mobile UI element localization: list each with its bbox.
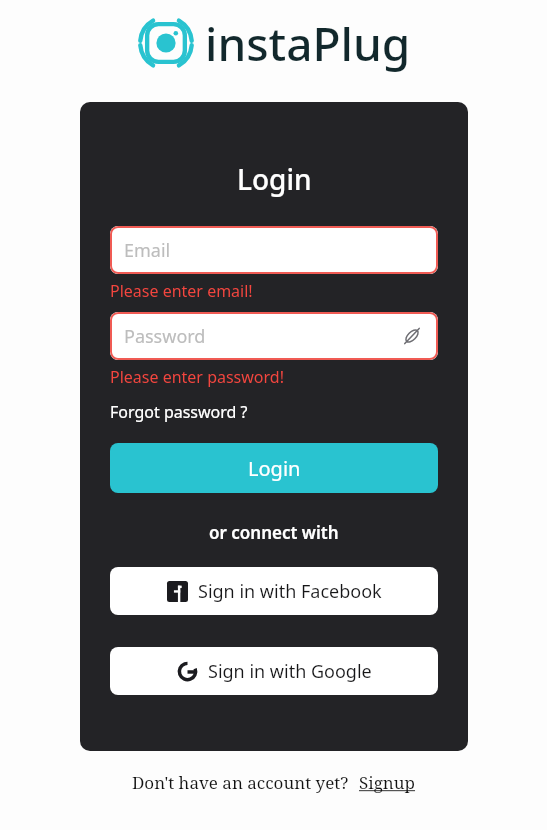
- staticText: Sign in with Google: [208, 659, 372, 684]
- button[interactable]: Forgot password ?: [110, 401, 438, 423]
- staticText: Email: [124, 238, 424, 263]
- staticText: Please enter password!: [110, 366, 284, 388]
- staticText: instaPlug: [205, 12, 411, 75]
- staticText: Signup: [359, 771, 416, 794]
- other: instaPlug logo: [137, 14, 195, 72]
- staticText: Login: [248, 455, 301, 482]
- button[interactable]: Show password: [400, 324, 424, 348]
- button[interactable]: Email: [110, 226, 438, 274]
- staticText: or connect with: [209, 521, 339, 544]
- staticText: Sign in with Facebook: [198, 579, 382, 604]
- button[interactable]: Sign in with Google: [110, 647, 438, 695]
- button[interactable]: Login: [110, 443, 438, 493]
- button[interactable]: Signup: [359, 771, 416, 794]
- staticText: Don't have an account yet?: [132, 771, 349, 794]
- button[interactable]: Sign in with Facebook: [110, 567, 438, 615]
- button[interactable]: Password: [110, 312, 438, 360]
- staticText: Login: [237, 160, 312, 198]
- staticText: Please enter email!: [110, 280, 253, 302]
- staticText: Password: [124, 324, 400, 349]
- staticText: Forgot password ?: [110, 401, 248, 423]
